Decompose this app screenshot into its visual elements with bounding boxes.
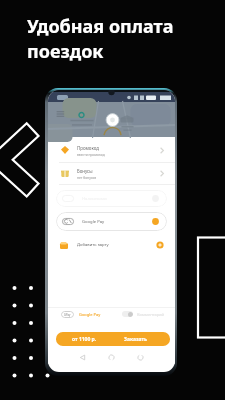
staticText: Google Pay [79,312,101,317]
staticText: Наличными [82,196,107,202]
staticText: нет бонусов [77,175,97,179]
staticText: Бонусы [77,168,93,174]
staticText: GPay [64,313,71,317]
staticText: Google Pay [82,219,105,225]
staticText: Добавить карту [77,242,109,248]
button[interactable]: Промокод [48,139,175,161]
button[interactable]: Comment toggle [122,311,133,317]
button[interactable]: Добавить карту [48,236,175,254]
staticText: Комментарий [137,312,165,317]
staticText: Удобная оплата [27,14,174,39]
staticText: ввести промокод [77,152,105,156]
button[interactable]: Google Pay [56,212,167,231]
button[interactable]: от 1100 р. [56,332,170,346]
button[interactable]: Google Pay [61,311,74,318]
staticText: от 1100 р. [72,336,97,343]
button[interactable]: Бонусы [48,162,175,184]
staticText: поездок [27,39,104,64]
staticText: Промокод [77,145,99,151]
staticText: Заказать [124,336,147,343]
button[interactable]: Наличными [56,190,167,207]
